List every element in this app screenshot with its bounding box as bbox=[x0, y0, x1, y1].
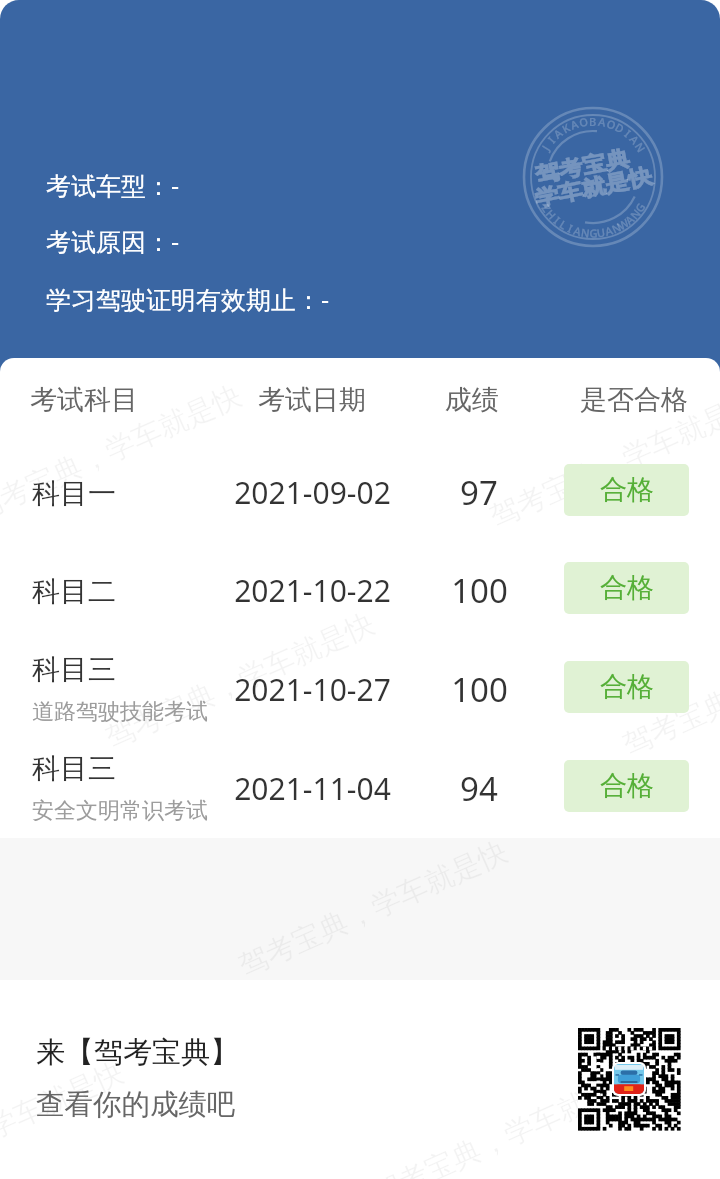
staticText: 是否合格 bbox=[580, 383, 688, 417]
button[interactable] bbox=[0, 641, 720, 739]
staticText: 科目二 bbox=[32, 574, 116, 609]
button[interactable]: 扫码下载驾考宝典 bbox=[578, 1028, 680, 1130]
staticText: 100 bbox=[451, 667, 508, 712]
button[interactable]: 合格 bbox=[564, 464, 689, 516]
staticText: 来【驾考宝典】 bbox=[36, 1034, 239, 1071]
staticText: 合格 bbox=[600, 473, 654, 507]
staticText: 成绩 bbox=[445, 383, 499, 417]
button[interactable] bbox=[0, 980, 720, 1179]
staticText: 合格 bbox=[600, 769, 654, 803]
button[interactable] bbox=[0, 542, 720, 640]
staticText: 考试车型：- bbox=[46, 168, 180, 202]
staticText: 合格 bbox=[600, 670, 654, 704]
staticText: 科目一 bbox=[32, 476, 116, 511]
staticText: 2021-10-22 bbox=[234, 570, 391, 611]
button[interactable] bbox=[0, 444, 720, 542]
staticText: 科目三 bbox=[32, 652, 116, 687]
staticText: 2021-11-04 bbox=[234, 768, 391, 809]
button[interactable]: 合格 bbox=[564, 760, 689, 812]
staticText: 科目三 bbox=[32, 751, 116, 786]
staticText: 考试日期 bbox=[258, 383, 366, 417]
button[interactable] bbox=[0, 740, 720, 838]
staticText: 97 bbox=[460, 470, 498, 515]
staticText: 2021-09-02 bbox=[234, 472, 391, 513]
staticText: 考试科目 bbox=[30, 383, 138, 417]
staticText: 查看你的成绩吧 bbox=[36, 1087, 236, 1123]
staticText: 考试原因：- bbox=[46, 224, 180, 258]
button[interactable]: 合格 bbox=[564, 562, 689, 614]
staticText: 94 bbox=[460, 766, 498, 811]
staticText: 安全文明常识考试 bbox=[32, 797, 208, 825]
staticText: 合格 bbox=[600, 571, 654, 605]
staticText: 学习驾驶证明有效期止：- bbox=[46, 282, 330, 316]
button[interactable]: 合格 bbox=[564, 661, 689, 713]
staticText: 道路驾驶技能考试 bbox=[32, 698, 208, 726]
staticText: 2021-10-27 bbox=[234, 669, 391, 710]
staticText: 100 bbox=[451, 568, 508, 613]
